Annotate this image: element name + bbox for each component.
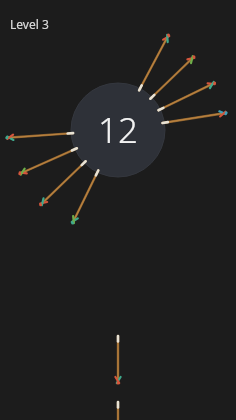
button[interactable]: Archery game play area [0,0,236,420]
staticText: 12 [98,106,138,154]
button[interactable]: Level 3 [10,16,49,32]
staticText: Level 3 [10,16,49,32]
